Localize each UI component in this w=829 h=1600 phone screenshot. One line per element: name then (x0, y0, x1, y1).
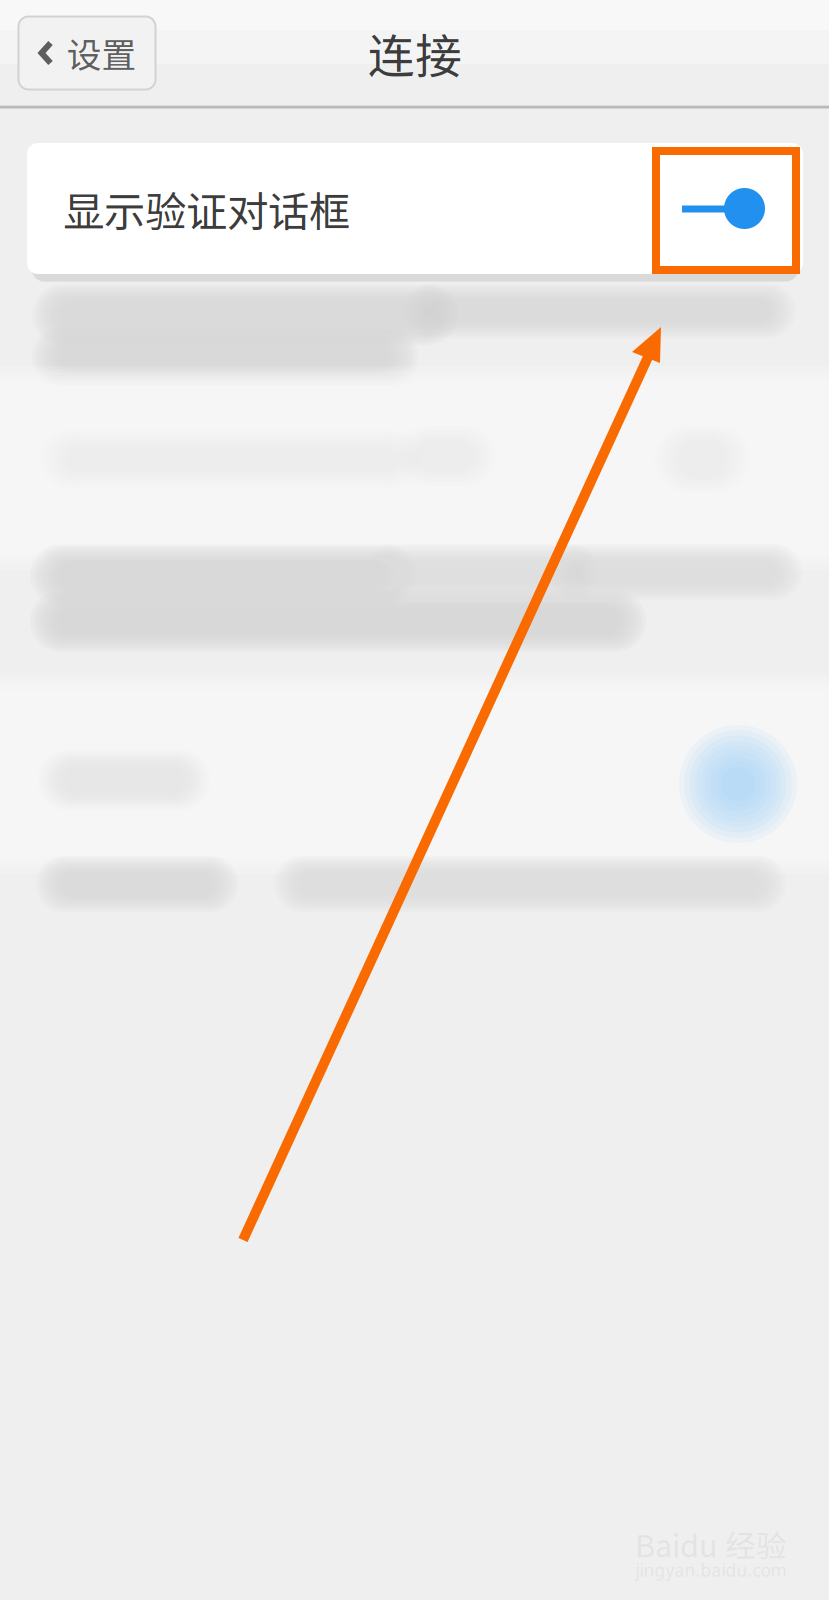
staticText: jingyan.baidu.com (635, 1558, 786, 1582)
staticText: 设置 (66, 28, 136, 78)
staticText: 显示验证对话框 (63, 179, 350, 239)
staticText: Baidu 经验 (635, 1522, 787, 1566)
staticText: 连接 (368, 19, 462, 87)
button[interactable]: 显示验证对话框 (654, 154, 790, 264)
button[interactable]: 设置 (18, 16, 155, 89)
